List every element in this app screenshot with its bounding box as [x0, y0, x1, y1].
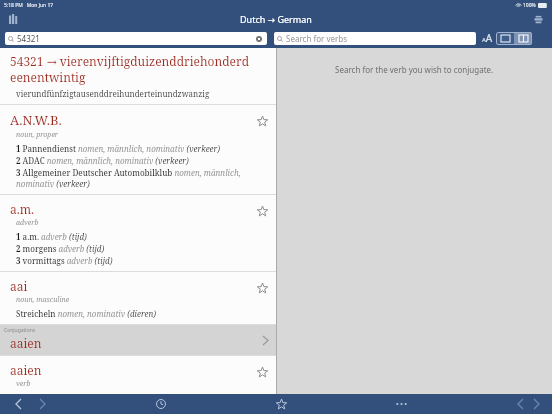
button[interactable]: Forward: [34, 396, 50, 412]
button[interactable]: Library: [6, 11, 22, 27]
button[interactable]: Next: [528, 396, 544, 412]
staticText: 54321 → vierenvijftigduizenddriehonderd …: [10, 53, 266, 85]
staticText: Search for verbs: [286, 33, 348, 44]
staticText: Conjugations: [4, 327, 36, 334]
staticText: Streicheln nomen, nominativ (dieren): [16, 308, 157, 319]
button[interactable]: History: [152, 395, 170, 413]
staticText: noun, proper: [16, 130, 59, 140]
staticText: verb: [16, 379, 31, 389]
button[interactable]: Share: [530, 11, 546, 27]
button[interactable]: Search for verbs: [274, 32, 476, 45]
button[interactable]: Back: [10, 396, 26, 412]
button[interactable]: Favorite: [254, 364, 270, 380]
staticText: 3 Allgemeiner Deutscher Automobilklub no…: [16, 167, 250, 189]
staticText: AA: [482, 31, 493, 45]
button[interactable]: aaien: [0, 356, 276, 394]
button[interactable]: a.m.: [0, 195, 276, 271]
button[interactable]: 54321 → vierenvijftigduizenddriehonderd …: [0, 48, 276, 104]
staticText: A.N.W.B.: [10, 111, 62, 129]
button[interactable]: Previous: [512, 396, 528, 412]
button[interactable]: A.N.W.B.: [0, 105, 276, 194]
staticText: aaien: [10, 335, 42, 351]
staticText: Search for the verb you wish to conjugat…: [335, 64, 494, 75]
button[interactable]: Single pane: [496, 32, 514, 45]
button[interactable]: More: [392, 395, 410, 413]
staticText: aai: [10, 278, 28, 294]
staticText: 100%: [523, 2, 536, 9]
staticText: 3 vormittags adverb (tijd): [16, 255, 113, 266]
staticText: 5:18 PM Mon Jun 17: [4, 2, 54, 9]
staticText: 54321: [17, 33, 40, 44]
staticText: aaien: [10, 362, 42, 378]
staticText: noun, masculine: [16, 295, 70, 305]
staticText: 1 a.m. adverb (tijd): [16, 231, 87, 242]
staticText: 2 morgens adverb (tijd): [16, 243, 105, 254]
staticText: 1 Pannendienst nomen, männlich, nominati…: [16, 143, 221, 154]
button[interactable]: Text size: [480, 31, 494, 45]
staticText: vierundfünfzigtausenddreihunderteinundzw…: [16, 88, 210, 99]
button[interactable]: Clear: [254, 34, 264, 44]
staticText: 2 ADAC nomen, männlich, nominativ (verke…: [16, 155, 189, 166]
staticText: adverb: [16, 218, 39, 228]
button[interactable]: Favorite: [254, 203, 270, 219]
staticText: Dutch → German: [240, 13, 312, 25]
button[interactable]: Favorites: [272, 395, 290, 413]
button[interactable]: aai: [0, 272, 276, 324]
button[interactable]: Favorite: [254, 280, 270, 296]
button[interactable]: Conjugations: [0, 325, 276, 355]
staticText: a.m.: [10, 201, 35, 217]
button[interactable]: Split pane: [514, 32, 532, 45]
button[interactable]: Favorite: [254, 113, 270, 129]
button[interactable]: 54321: [5, 32, 267, 45]
